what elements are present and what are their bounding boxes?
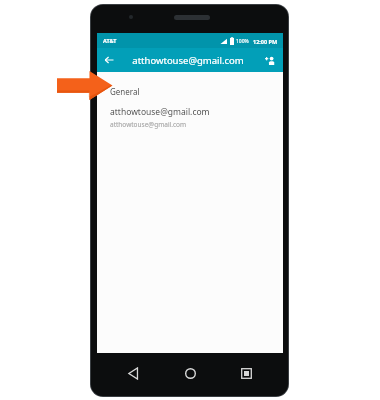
staticText: atthowtouse@gmail.com xyxy=(132,54,244,67)
button[interactable]: Home xyxy=(175,361,205,385)
button[interactable]: Add contact xyxy=(260,50,280,70)
staticText: 12:00 PM xyxy=(253,38,278,45)
button[interactable]: Recent apps xyxy=(231,361,261,385)
staticText: 100% xyxy=(236,38,249,45)
button[interactable]: General xyxy=(97,81,283,101)
staticText: AT&T xyxy=(103,37,117,44)
button[interactable]: Back xyxy=(118,361,148,385)
staticText: General xyxy=(110,86,140,97)
staticText: atthowtouse@gmail.com xyxy=(110,120,187,129)
button[interactable]: Navigate up xyxy=(99,50,119,70)
button[interactable]: atthowtouse@gmail.com xyxy=(97,105,283,134)
staticText: atthowtouse@gmail.com xyxy=(110,106,210,118)
